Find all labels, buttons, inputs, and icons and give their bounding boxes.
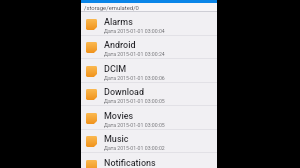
staticText: Download: [104, 87, 144, 98]
staticText: Дата 2015-01-01 03:00:05: [104, 122, 165, 128]
staticText: Alarms: [104, 17, 133, 28]
staticText: /storage/emulated/0: [84, 5, 139, 12]
staticText: DCIM: [104, 64, 127, 75]
staticText: Дата 2015-01-01 03:00:05: [104, 98, 165, 104]
button[interactable]: Android: [81, 35, 217, 59]
staticText: Notifications: [104, 158, 156, 168]
staticText: Дата 2015-01-01 03:00:02: [104, 145, 165, 151]
staticText: Movies: [104, 111, 134, 122]
staticText: Дата 2015-01-01 03:00:04: [104, 28, 165, 34]
staticText: Дата 2015-01-01 03:00:24: [104, 51, 165, 57]
staticText: Music: [104, 134, 129, 145]
button[interactable]: Alarms: [81, 12, 217, 36]
button[interactable]: Download: [81, 82, 217, 106]
staticText: Дата 2015-01-01 03:00:06: [104, 75, 165, 81]
button[interactable]: Movies: [81, 106, 217, 130]
button[interactable]: Music: [81, 129, 217, 153]
button[interactable]: DCIM: [81, 59, 217, 83]
staticText: Android: [104, 40, 136, 51]
button[interactable]: Notifications: [81, 153, 217, 168]
